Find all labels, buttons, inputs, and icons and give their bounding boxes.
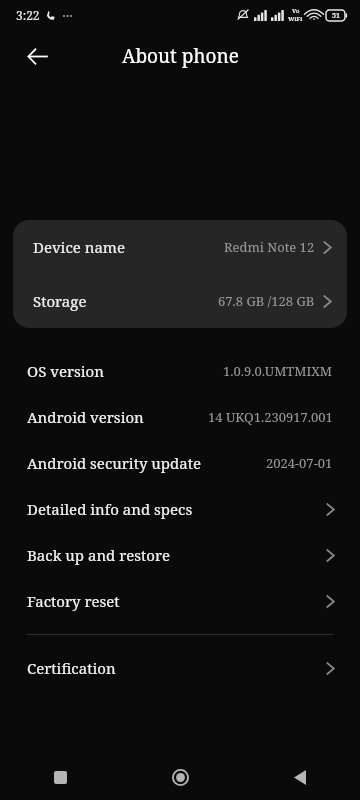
staticText: Certification [27,658,116,678]
staticText: Detailed info and specs [27,499,193,519]
staticText: Android version [27,407,144,427]
staticText: Factory reset [27,591,120,611]
button[interactable]: Back up and restore [0,532,360,578]
staticText: 51 [332,11,340,21]
button[interactable]: Android security update [0,440,360,486]
button[interactable]: Home [120,754,240,800]
button[interactable]: Detailed info and specs [0,486,360,532]
staticText: Device name [33,237,126,257]
staticText: 2024-07-01 [266,454,333,472]
staticText: 14 UKQ1.230917.001 [208,408,333,426]
button[interactable]: OS version [0,348,360,394]
button[interactable]: Device name [13,220,347,274]
staticText: About phone [122,43,239,69]
button[interactable]: Android version [0,394,360,440]
staticText: WiFi [288,15,303,23]
button[interactable]: Certification [0,645,360,691]
button[interactable]: Storage [13,274,347,328]
button[interactable]: Back [240,754,360,800]
button[interactable]: Recents [0,754,120,800]
staticText: 3:22 [16,7,40,23]
staticText: Redmi Note 12 [224,238,315,256]
button[interactable]: Factory reset [0,578,360,624]
staticText: 1.0.9.0.UMTMIXM [223,362,333,380]
button[interactable]: Back [14,33,60,79]
staticText: Android security update [27,453,202,473]
staticText: Storage [33,291,87,311]
staticText: Back up and restore [27,545,171,565]
staticText: OS version [27,361,104,381]
staticText: Vo [292,7,300,15]
staticText: 67.8 GB /128 GB [218,292,315,310]
